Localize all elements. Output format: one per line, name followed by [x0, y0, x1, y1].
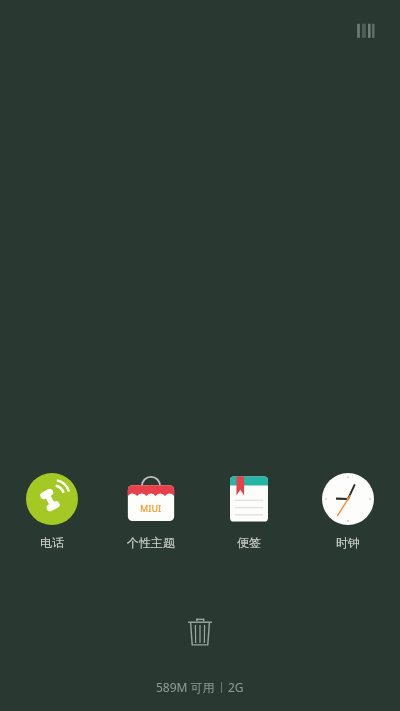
button[interactable]: 电话 [6, 471, 98, 552]
staticText: 电话 [40, 535, 64, 550]
staticText: 589M 可用 [156, 679, 215, 695]
button[interactable]: 便签 [203, 471, 295, 552]
button[interactable]: Widgets [356, 22, 376, 40]
staticText: 便签 [237, 535, 261, 550]
staticText: 时钟 [336, 535, 360, 550]
staticText: 个性主题 [127, 535, 175, 550]
button[interactable]: 时钟 [302, 471, 394, 552]
button[interactable]: MIUI [105, 471, 197, 552]
staticText: MIUI [140, 502, 162, 514]
staticText: 2G [228, 679, 244, 695]
button[interactable]: Remove [180, 612, 220, 652]
